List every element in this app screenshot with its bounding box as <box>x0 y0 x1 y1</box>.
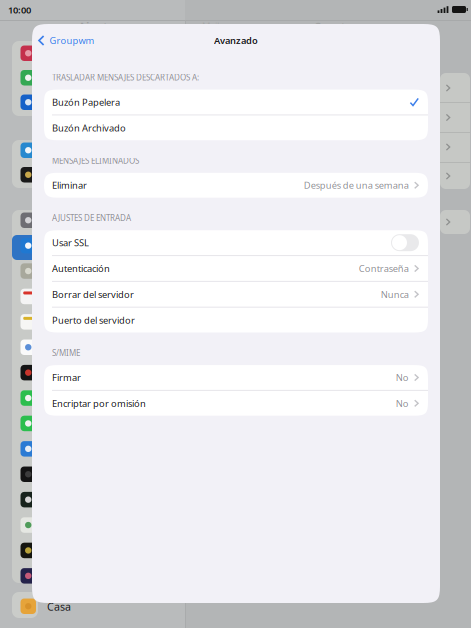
staticText: Avanzado <box>214 34 258 47</box>
staticText: Usar SSL <box>52 236 89 249</box>
staticText: Buzón Papelera <box>52 96 120 108</box>
staticText: No <box>396 397 409 409</box>
staticText: Eliminar <box>52 179 87 191</box>
staticText: Borrar del servidor <box>52 288 134 300</box>
staticText: Casa <box>47 599 71 614</box>
staticText: Firmar <box>52 371 81 384</box>
staticText: Cuenta <box>314 19 351 34</box>
staticText: Nunca <box>381 288 409 300</box>
button[interactable]: Encriptar por omisión <box>44 391 428 416</box>
staticText: Autenticación <box>52 262 110 275</box>
staticText: Contraseña <box>359 262 409 275</box>
staticText: Ajustes <box>78 19 121 35</box>
staticText: Puerto del servidor <box>52 314 135 326</box>
staticText: Después de una semana <box>304 179 409 191</box>
button[interactable]: Firmar <box>44 365 428 390</box>
staticText: Buzón Archivado <box>52 122 126 134</box>
staticText: AJUSTES DE ENTRADA <box>52 213 131 223</box>
staticText: Mail <box>202 20 219 32</box>
button[interactable]: Puerto del servidor <box>44 308 428 332</box>
staticText: Encriptar por omisión <box>52 397 146 409</box>
staticText: S/MIME <box>52 347 80 358</box>
staticText: MENSAJES ELIMINADOS <box>52 155 139 166</box>
button[interactable]: Buzón Papelera <box>44 90 428 114</box>
button[interactable]: Eliminar <box>44 173 428 198</box>
staticText: Groupwm <box>50 34 95 47</box>
button[interactable]: Autenticación <box>44 256 428 281</box>
staticText: TRASLADAR MENSAJES DESCARTADOS A: <box>52 72 199 83</box>
staticText: 10:00 <box>8 4 31 16</box>
button[interactable]: Borrar del servidor <box>44 282 428 307</box>
staticText: No <box>396 371 409 384</box>
button[interactable]: Buzón Archivado <box>44 115 428 140</box>
button[interactable]: Usar SSL <box>44 230 428 255</box>
button[interactable]: Groupwm <box>32 28 101 52</box>
